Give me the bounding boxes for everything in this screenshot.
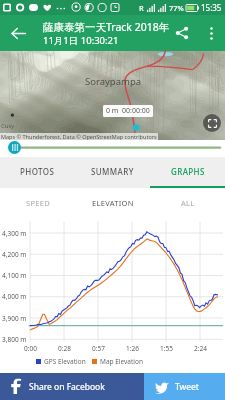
staticText: ALL — [181, 198, 195, 208]
staticText: 77% — [169, 3, 184, 13]
staticText: GPS Elevation — [44, 357, 86, 366]
staticText: Tweet — [175, 381, 199, 393]
staticText: Maps © Thunderforest, Data © OpenStreetM… — [1, 133, 157, 140]
button[interactable]: Navigate up — [0, 15, 36, 51]
staticText: 1:55 — [160, 344, 173, 353]
button[interactable]: GRAPHS — [150, 157, 225, 186]
staticText: Cusy — [1, 122, 15, 130]
staticText: Soraypampa — [85, 75, 142, 88]
button[interactable]: PHOTOS — [0, 157, 75, 186]
button[interactable]: Tweet — [144, 373, 225, 400]
staticText: 4,100 m — [2, 271, 27, 280]
staticText: 4,300 m — [2, 229, 27, 238]
button[interactable]: SPEED — [0, 188, 75, 218]
staticText: 1:26 — [126, 344, 139, 353]
button[interactable]: Full screen map — [203, 114, 221, 132]
staticText: 3,900 m — [2, 314, 27, 323]
staticText: 0 m 00:00:00 — [106, 106, 150, 116]
staticText: 4,000 m — [2, 292, 27, 301]
staticText: ELEVATION — [92, 198, 134, 208]
staticText: 0:00 — [24, 344, 37, 353]
staticText: 4,200 m — [2, 250, 27, 259]
staticText: 15:35 — [201, 2, 222, 13]
staticText: SPEED — [26, 198, 50, 208]
staticText: R — [139, 3, 144, 13]
staticText: Share on Facebook — [29, 381, 105, 393]
staticText: 11月1日 10:30:21 — [43, 34, 119, 47]
staticText: 2:24 — [194, 344, 207, 353]
button[interactable]: Share on Facebook — [0, 373, 144, 400]
staticText: SUMMARY — [91, 166, 134, 177]
button[interactable]: More options — [198, 20, 225, 47]
staticText: 0:28 — [58, 344, 71, 353]
staticText: 0:57 — [92, 344, 105, 353]
staticText: 薩康泰第一天Track 2018年 — [43, 20, 170, 34]
button[interactable]: SUMMARY — [75, 157, 150, 186]
button[interactable]: Playback position — [8, 141, 21, 154]
button[interactable]: ELEVATION — [75, 188, 150, 218]
button[interactable]: Share — [166, 17, 198, 49]
staticText: Map Elevation — [100, 357, 143, 366]
staticText: 3,800 m — [2, 335, 27, 344]
staticText: PHOTOS — [20, 166, 55, 177]
staticText: GRAPHS — [171, 166, 205, 177]
button[interactable]: ALL — [150, 188, 225, 218]
